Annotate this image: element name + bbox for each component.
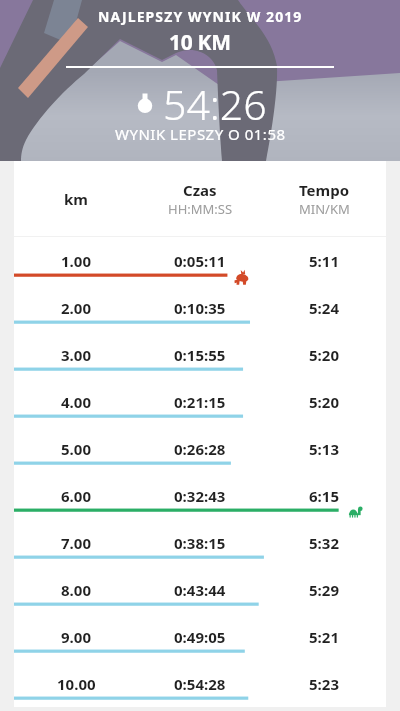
staticText: 0:10:35 <box>174 298 226 318</box>
staticText: km <box>64 189 88 209</box>
button[interactable]: 2.00 <box>14 284 386 331</box>
staticText: HH:MM:SS <box>168 200 233 218</box>
staticText: 5:13 <box>309 439 339 459</box>
staticText: 0:38:15 <box>174 533 226 553</box>
staticText: 8.00 <box>61 580 91 600</box>
staticText: 6:15 <box>309 486 339 506</box>
staticText: 5:24 <box>309 298 339 318</box>
staticText: 3.00 <box>61 345 91 365</box>
staticText: 5:20 <box>309 345 339 365</box>
button[interactable]: 4.00 <box>14 378 386 425</box>
staticText: 0:26:28 <box>174 439 226 459</box>
staticText: 0:05:11 <box>174 251 226 271</box>
button[interactable]: 6.00 <box>14 472 386 519</box>
button[interactable]: 1.00 <box>14 237 386 284</box>
staticText: Czas <box>183 180 217 200</box>
button[interactable]: 3.00 <box>14 331 386 378</box>
staticText: 5:20 <box>309 392 339 412</box>
staticText: Tempo <box>299 180 350 200</box>
staticText: MIN/KM <box>299 200 350 218</box>
staticText: 6.00 <box>61 486 91 506</box>
staticText: 0:32:43 <box>174 486 226 506</box>
staticText: WYNIK LEPSZY O 01:58 <box>115 124 286 144</box>
staticText: 5:21 <box>309 627 339 647</box>
staticText: 5:29 <box>309 580 339 600</box>
button[interactable]: 7.00 <box>14 519 386 566</box>
button[interactable]: 5.00 <box>14 425 386 472</box>
staticText: 0:49:05 <box>174 627 226 647</box>
staticText: 5:23 <box>309 674 339 694</box>
staticText: 54:26 <box>163 76 267 132</box>
staticText: 5:11 <box>309 251 339 271</box>
button[interactable]: 8.00 <box>14 566 386 613</box>
staticText: 0:15:55 <box>174 345 226 365</box>
staticText: 4.00 <box>61 392 91 412</box>
staticText: 0:21:15 <box>174 392 226 412</box>
staticText: NAJLEPSZY WYNIK W 2019 <box>98 7 303 26</box>
button[interactable]: 10.00 <box>14 660 386 707</box>
staticText: 2.00 <box>61 298 91 318</box>
staticText: 0:54:28 <box>174 674 226 694</box>
staticText: 1.00 <box>61 251 91 271</box>
staticText: 5:32 <box>309 533 339 553</box>
staticText: 10 KM <box>169 28 231 57</box>
staticText: 10.00 <box>57 674 96 694</box>
staticText: 5.00 <box>61 439 91 459</box>
staticText: 0:43:44 <box>174 580 226 600</box>
button[interactable]: 9.00 <box>14 613 386 660</box>
staticText: 7.00 <box>61 533 91 553</box>
staticText: 9.00 <box>61 627 91 647</box>
